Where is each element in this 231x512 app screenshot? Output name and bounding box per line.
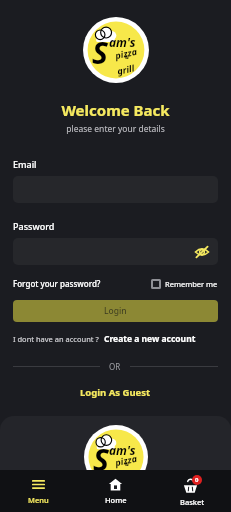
staticText: pizza [114, 452, 138, 468]
other: Menu [31, 477, 46, 492]
staticText: please enter your details [0, 123, 231, 135]
staticText: Login [104, 305, 127, 317]
staticText: grill [116, 61, 136, 77]
staticText: Basket [180, 497, 205, 507]
button[interactable]: Basket [154, 470, 231, 512]
button[interactable]: Create a new account [104, 333, 196, 345]
button[interactable]: Show password [193, 243, 211, 261]
button[interactable]: Show password [13, 238, 218, 265]
staticText: grill [116, 467, 136, 483]
button[interactable]: Login As Guest [13, 386, 218, 399]
staticText: & [125, 54, 129, 61]
button[interactable]: Forgot your password? [13, 278, 101, 289]
staticText: Menu [28, 495, 49, 505]
button[interactable]: Menu [0, 470, 77, 512]
staticText: Home [105, 495, 127, 505]
staticText: S [92, 32, 108, 73]
staticText: Remember me [165, 279, 218, 289]
staticText: 0 [195, 476, 199, 484]
staticText: Login As Guest [80, 386, 151, 399]
button[interactable]: Remember me [151, 279, 218, 289]
staticText: & [125, 461, 129, 468]
staticText: OR [109, 361, 121, 372]
staticText: am's [109, 34, 136, 50]
staticText: am's [109, 442, 136, 458]
button[interactable]: Home [77, 470, 154, 512]
other: Basket [183, 475, 202, 494]
button[interactable]: Login [13, 300, 218, 322]
other: Home [108, 477, 123, 492]
staticText: S [93, 439, 109, 480]
staticText: I dont have an account ? [13, 334, 99, 344]
staticText: Email [13, 158, 37, 170]
staticText: pizza [114, 45, 138, 61]
staticText: Welcome Back [0, 100, 231, 120]
staticText: Password [13, 220, 55, 232]
